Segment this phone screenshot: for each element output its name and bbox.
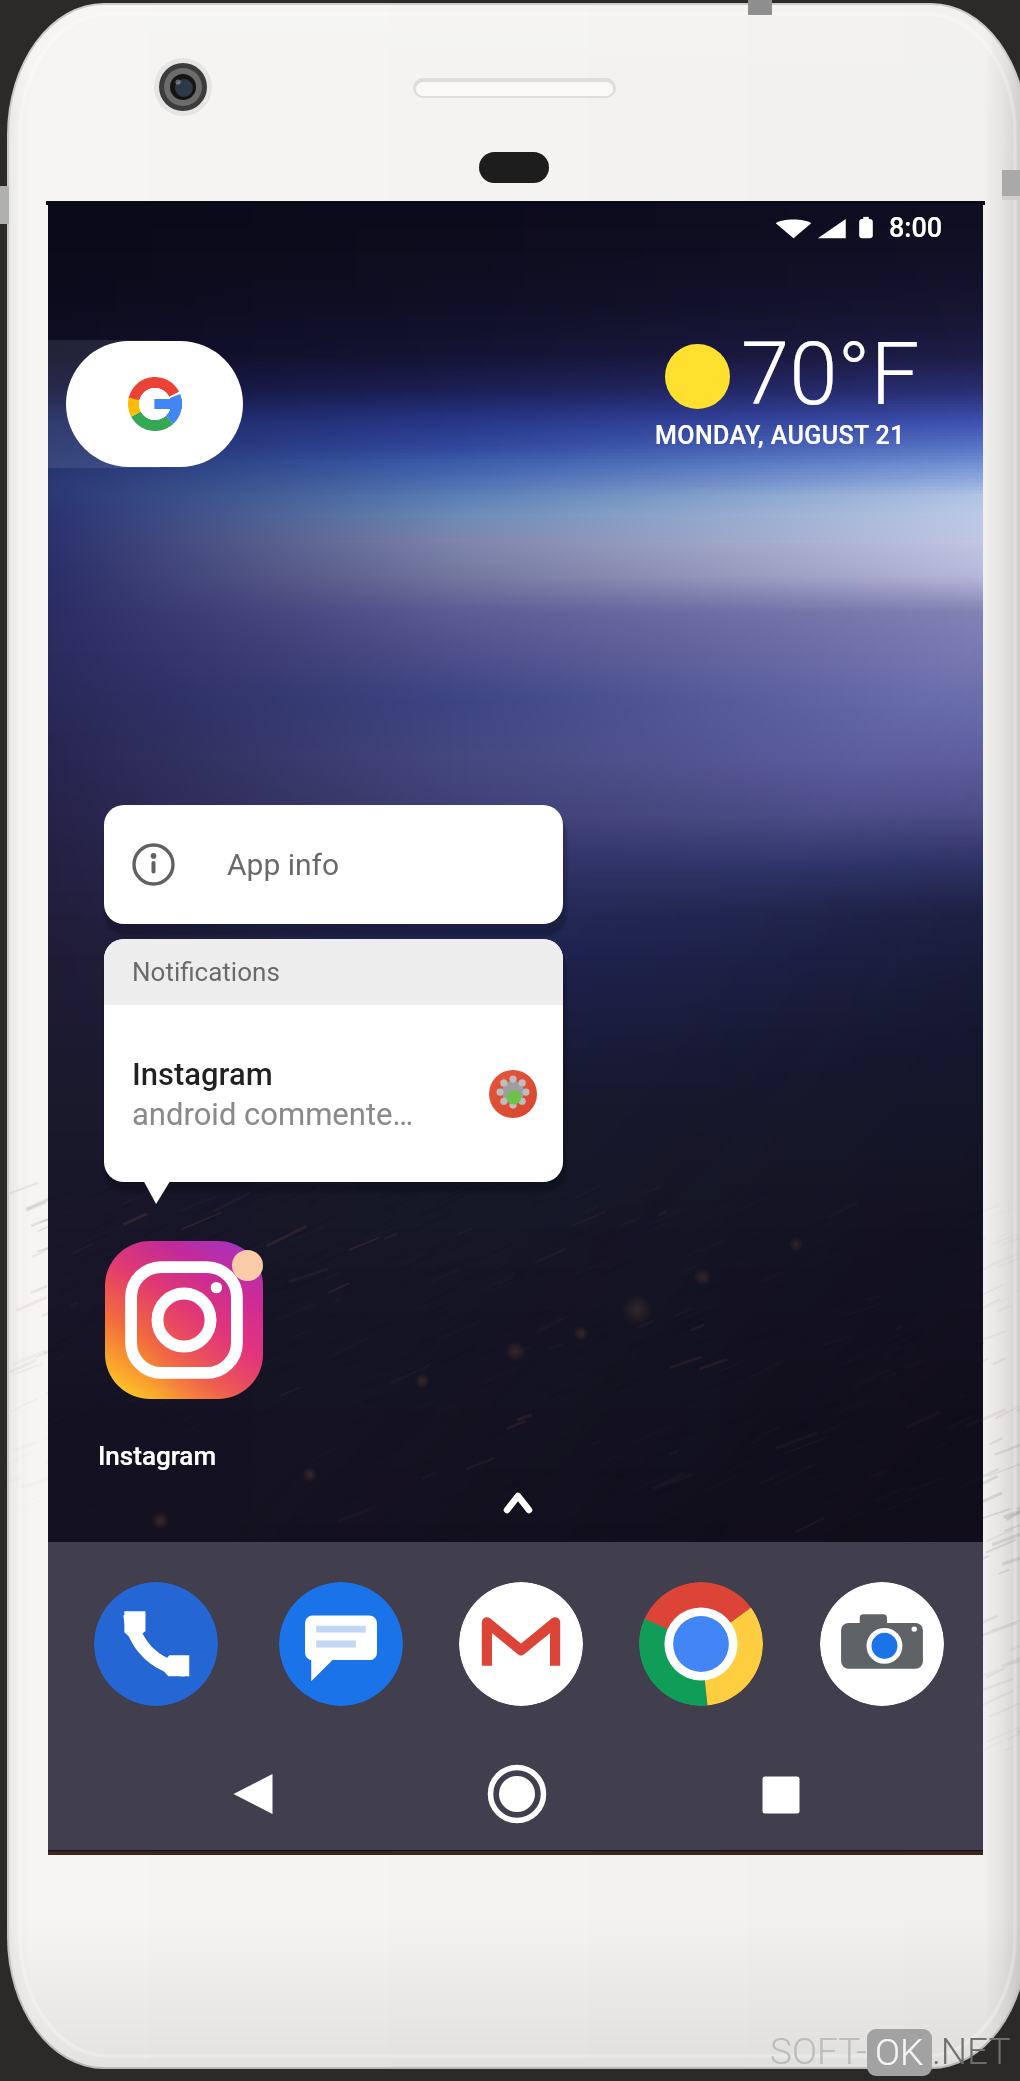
staticText: Instagram: [132, 1056, 273, 1092]
staticText: .NET: [932, 2030, 1011, 2073]
button[interactable]: Instagram: [97, 1234, 280, 1471]
button[interactable]: Recents: [736, 1750, 826, 1840]
button[interactable]: Open app drawer: [471, 1470, 565, 1536]
button[interactable]: Back: [208, 1749, 298, 1839]
button[interactable]: Instagram: [104, 1005, 563, 1182]
button[interactable]: App info: [104, 805, 563, 924]
button[interactable]: Gmail: [459, 1582, 583, 1706]
staticText: App info: [227, 847, 340, 882]
staticText: MONDAY, AUGUST 21: [655, 421, 905, 450]
staticText: android commente…: [132, 1096, 414, 1132]
button[interactable]: Camera: [820, 1582, 944, 1706]
button[interactable]: Chrome: [639, 1582, 763, 1706]
button[interactable]: Home: [472, 1749, 562, 1839]
staticText: OK: [875, 2031, 924, 2074]
staticText: Notifications: [132, 957, 280, 987]
staticText: 8:00: [889, 212, 943, 244]
staticText: Instagram: [98, 1441, 217, 1471]
button[interactable]: Google search: [66, 341, 243, 467]
button[interactable]: Phone: [94, 1582, 218, 1706]
button[interactable]: Messages: [279, 1582, 403, 1706]
staticText: SOFT-: [770, 2030, 867, 2073]
staticText: 70°F: [741, 323, 920, 425]
